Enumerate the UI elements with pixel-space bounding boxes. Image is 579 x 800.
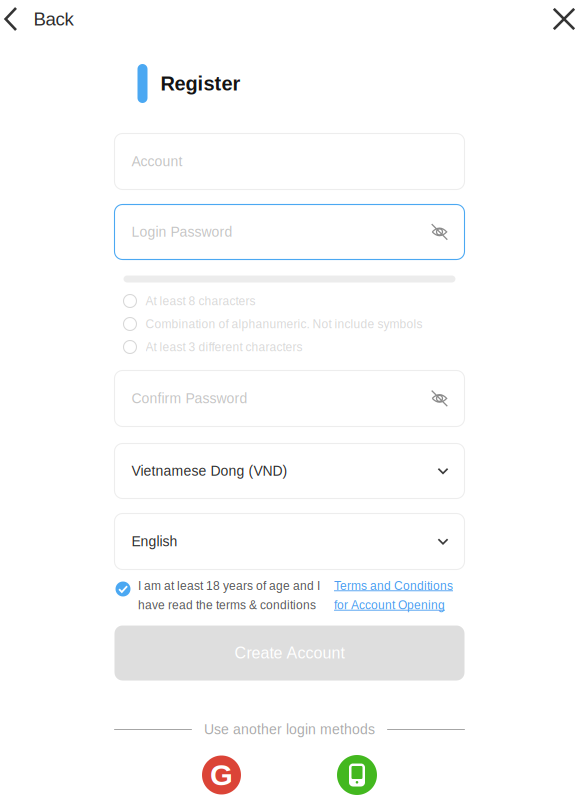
staticText: At least 3 different characters [145, 340, 302, 354]
staticText: Register [160, 72, 240, 95]
staticText: Use another login methods [204, 722, 375, 737]
button[interactable]: Sign in with phone number [337, 755, 377, 795]
button[interactable]: Back [0, 0, 84, 38]
staticText: G [210, 759, 233, 791]
staticText: Login Password [131, 224, 232, 240]
staticText: Account [131, 154, 182, 169]
staticText: Back [34, 9, 74, 29]
staticText: Combination of alphanumeric. Not include… [145, 317, 422, 331]
staticText: Terms and Conditions [334, 579, 453, 592]
staticText: have read the terms & conditions [138, 598, 316, 612]
button[interactable]: Close [545, 0, 579, 38]
button[interactable]: Vietnamese Dong (VND) [114, 443, 464, 498]
staticText: English [131, 534, 177, 549]
button[interactable]: Confirm Password [114, 370, 464, 426]
button[interactable]: Create Account [114, 625, 464, 680]
button[interactable]: Login Password [114, 204, 464, 259]
staticText: At least 8 characters [145, 294, 255, 308]
button[interactable]: Terms and Conditions [334, 576, 456, 614]
staticText: for Account Opening [334, 598, 445, 612]
staticText: Vietnamese Dong (VND) [131, 463, 287, 479]
button[interactable]: English [114, 513, 464, 569]
button[interactable]: Sign in with Google [202, 755, 241, 794]
button[interactable]: Agree to terms and conditions [114, 576, 131, 614]
staticText: Confirm Password [131, 391, 247, 406]
staticText: I am at least 18 years of age and I [138, 579, 320, 592]
button[interactable]: Account [114, 133, 464, 189]
staticText: Create Account [234, 644, 344, 662]
